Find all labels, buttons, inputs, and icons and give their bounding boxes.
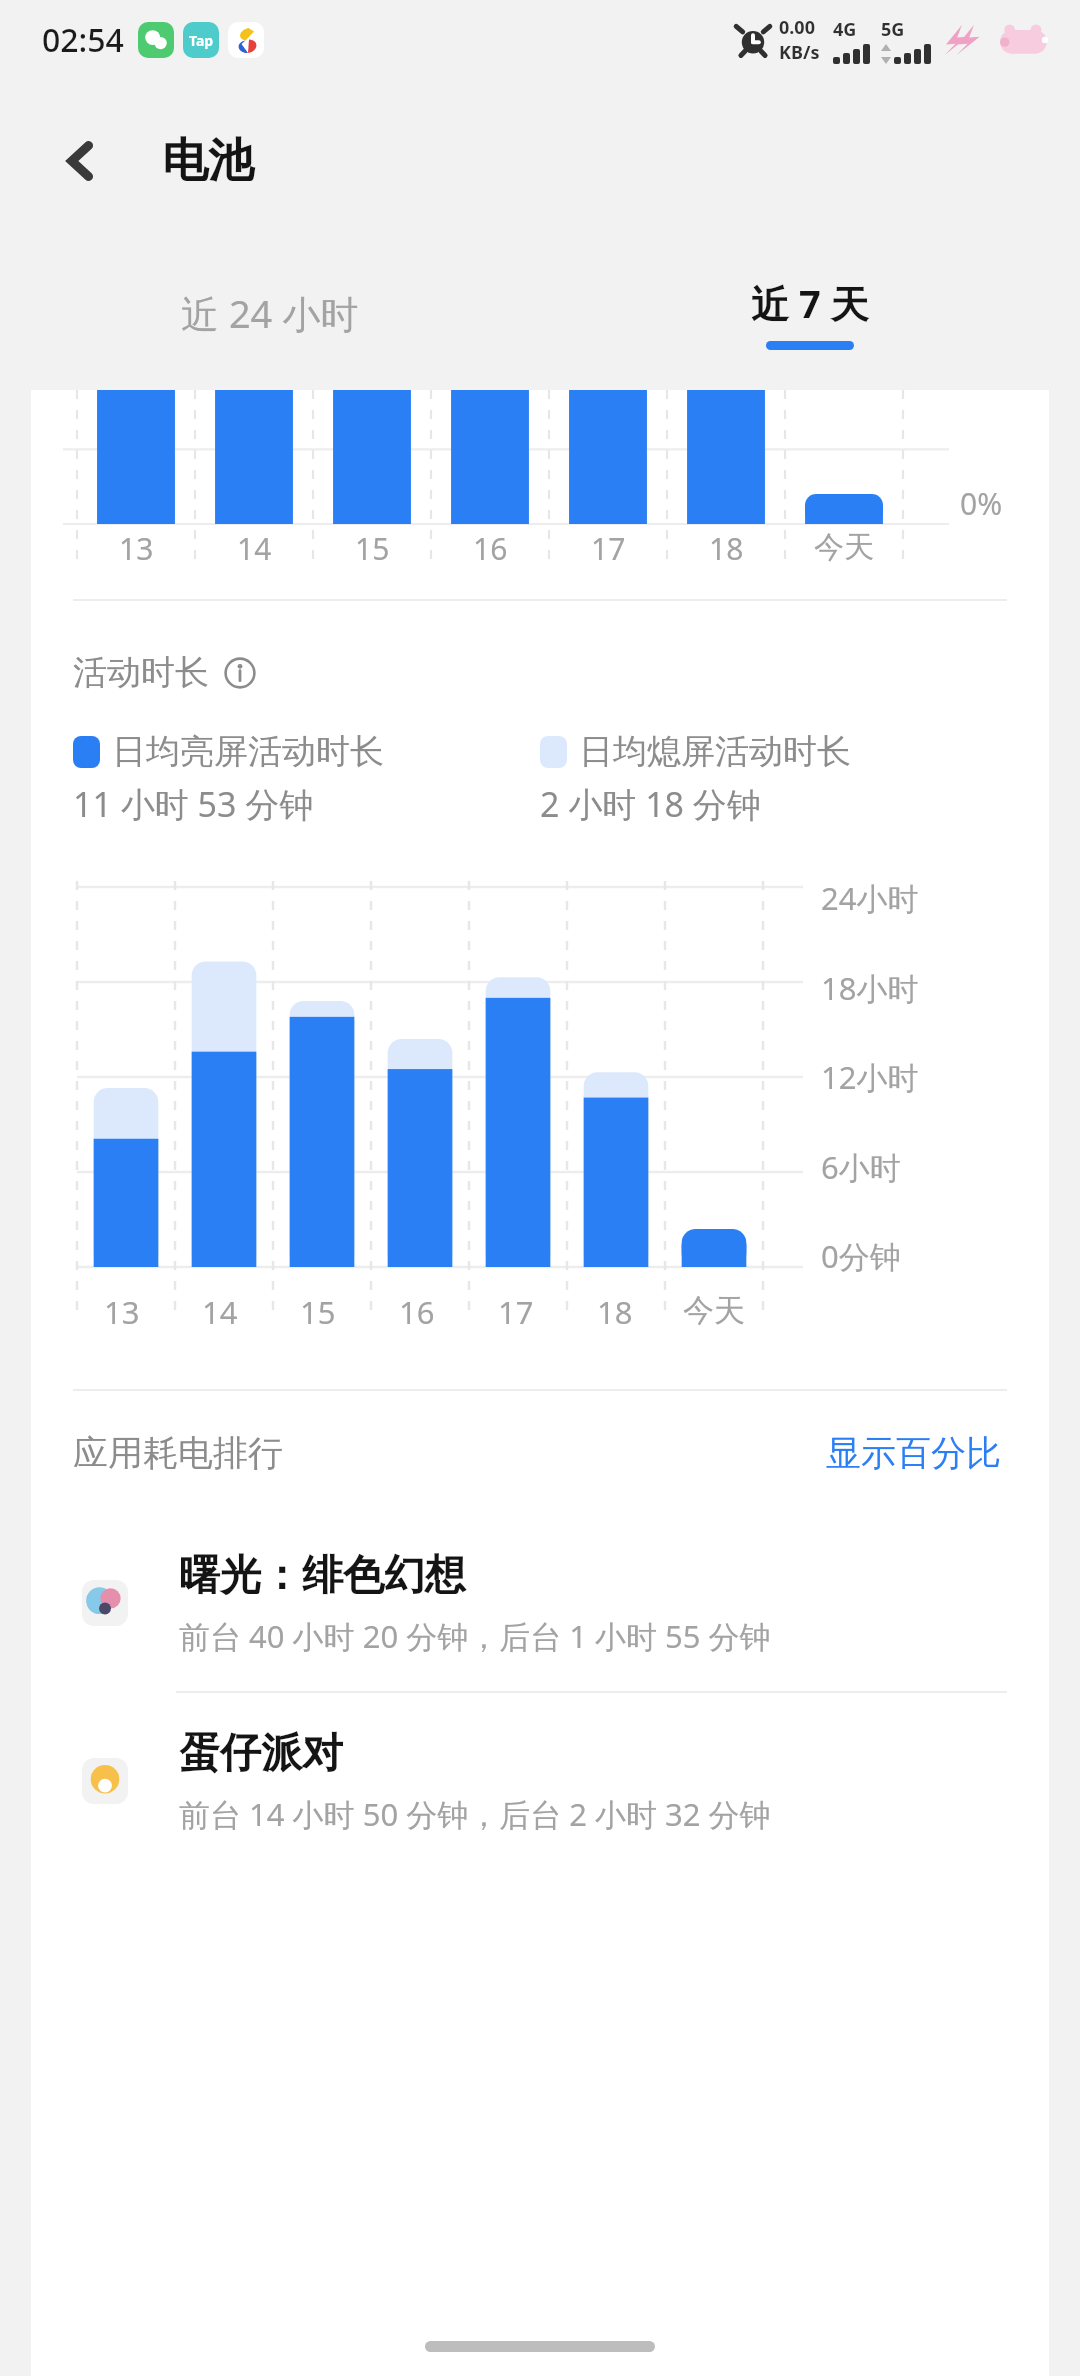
staticText: 近 24 小时: [181, 287, 359, 339]
staticText: 6小时: [821, 1146, 901, 1188]
button[interactable]: 近 24 小时: [0, 242, 540, 384]
button[interactable]: 返回: [42, 122, 120, 200]
staticText: 02:54: [42, 18, 124, 62]
staticText: 前台 14 小时 50 分钟，后台 2 小时 32 分钟: [179, 1793, 771, 1835]
staticText: 18: [597, 1291, 633, 1333]
staticText: 今天: [683, 1291, 745, 1330]
staticText: 蛋仔派对: [179, 1728, 343, 1780]
button[interactable]: 说明: [223, 656, 257, 690]
staticText: 16: [473, 528, 508, 569]
staticText: 24小时: [821, 877, 919, 919]
staticText: 日均熄屏活动时长: [579, 730, 851, 773]
staticText: 11 小时 53 分钟: [73, 781, 314, 827]
staticText: 15: [300, 1291, 336, 1333]
staticText: 12小时: [821, 1056, 919, 1098]
staticText: 5G: [881, 17, 905, 42]
staticText: 13: [119, 528, 154, 569]
staticText: 近 7 天: [751, 277, 869, 329]
staticText: 曙光：绯色幻想: [179, 1550, 466, 1602]
staticText: 0.00: [779, 15, 815, 40]
staticText: 4G: [833, 17, 857, 42]
staticText: 17: [591, 528, 626, 569]
staticText: 今天: [814, 528, 874, 566]
staticText: KB/s: [779, 40, 820, 65]
staticText: 14: [237, 528, 272, 569]
staticText: 2 小时 18 分钟: [540, 781, 761, 827]
button[interactable]: 近 7 天: [540, 242, 1080, 384]
staticText: 17: [498, 1291, 534, 1333]
staticText: 电池: [162, 132, 254, 190]
staticText: 0%: [960, 483, 1003, 524]
button[interactable]: 蛋仔派对: [31, 1693, 1049, 1869]
staticText: 18: [709, 528, 744, 569]
staticText: Tap: [189, 31, 214, 50]
staticText: 14: [202, 1291, 238, 1333]
button[interactable]: 显示百分比: [820, 1425, 1007, 1481]
staticText: 前台 40 小时 20 分钟，后台 1 小时 55 分钟: [179, 1615, 771, 1657]
staticText: 15: [355, 528, 390, 569]
staticText: 活动时长: [73, 651, 209, 694]
staticText: 显示百分比: [826, 1431, 1001, 1475]
staticText: 13: [104, 1291, 140, 1333]
staticText: 16: [399, 1291, 435, 1333]
staticText: 日均亮屏活动时长: [112, 730, 384, 773]
button[interactable]: 曙光：绯色幻想: [31, 1515, 1049, 1691]
staticText: 应用耗电排行: [73, 1431, 283, 1475]
staticText: 0分钟: [821, 1235, 901, 1277]
staticText: 18小时: [821, 967, 919, 1009]
